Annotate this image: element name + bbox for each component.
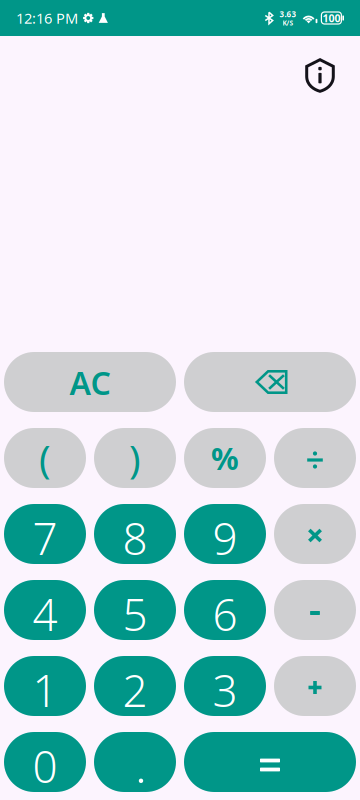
button[interactable]: Info [299, 52, 341, 99]
staticText: 7 [32, 509, 57, 567]
button[interactable]: All clear [4, 352, 176, 412]
button[interactable]: Decimal point [94, 732, 176, 792]
staticText: % [211, 438, 239, 478]
staticText: AC [69, 361, 110, 404]
button[interactable]: 6 [184, 580, 266, 640]
button[interactable]: 7 [4, 504, 86, 564]
staticText: K/S [283, 18, 294, 27]
staticText: 2 [122, 661, 147, 719]
button[interactable]: Percent [184, 428, 266, 488]
button[interactable]: 9 [184, 504, 266, 564]
button[interactable]: 2 [94, 656, 176, 716]
staticText: 100 [322, 11, 340, 25]
staticText: 3.63 [280, 9, 297, 19]
button[interactable]: 0 [4, 732, 86, 792]
staticText: 9 [212, 509, 237, 567]
staticText: 0 [32, 737, 57, 795]
staticText: 3 [212, 661, 237, 719]
staticText: 6 [212, 585, 237, 643]
button[interactable]: Backspace [184, 352, 356, 412]
button[interactable]: Open parenthesis [4, 428, 86, 488]
staticText: ) [129, 432, 141, 484]
button[interactable]: Multiply [274, 504, 356, 564]
button[interactable]: Subtract [274, 580, 356, 640]
button[interactable]: 4 [4, 580, 86, 640]
button[interactable]: 8 [94, 504, 176, 564]
staticText: 4 [32, 585, 57, 643]
button[interactable]: Equals [184, 732, 356, 792]
button[interactable]: Divide [274, 428, 356, 488]
staticText: 1 [32, 661, 57, 719]
staticText: 12:16 PM [16, 8, 78, 28]
button[interactable]: Close parenthesis [94, 428, 176, 488]
staticText: 8 [122, 509, 147, 567]
button[interactable]: Add [274, 656, 356, 716]
button[interactable]: 1 [4, 656, 86, 716]
staticText: 5 [122, 585, 147, 643]
button[interactable]: 5 [94, 580, 176, 640]
button[interactable]: 3 [184, 656, 266, 716]
staticText: ( [39, 432, 51, 484]
